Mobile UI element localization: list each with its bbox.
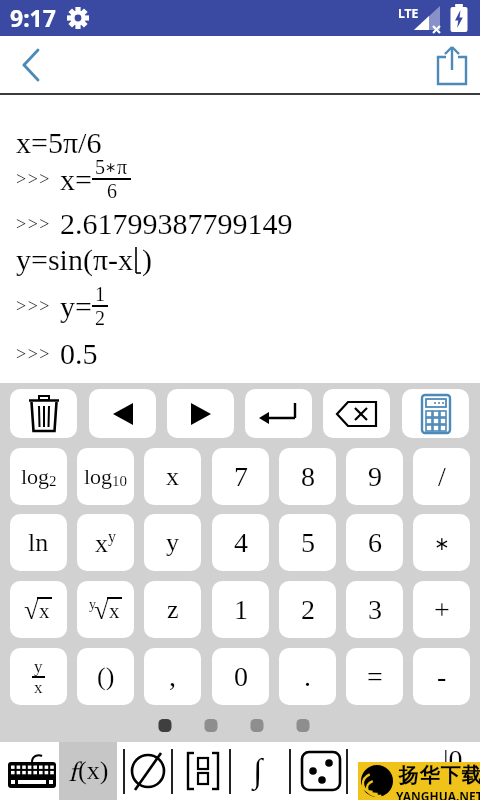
staticText: √: [94, 595, 109, 625]
button[interactable]: [323, 389, 390, 438]
staticText: 0: [234, 661, 248, 692]
staticText: YANGHUA.NET: [396, 788, 480, 800]
staticText: |0: [443, 744, 463, 775]
staticText: y: [166, 528, 179, 557]
button[interactable]: x: [144, 448, 201, 505]
staticText: (): [97, 662, 115, 691]
staticText: 1: [95, 283, 105, 305]
staticText: y: [89, 597, 96, 613]
staticText: =: [367, 661, 383, 692]
button[interactable]: 3: [346, 581, 403, 638]
staticText: +: [434, 594, 450, 625]
staticText: 5: [301, 527, 315, 558]
button[interactable]: 0: [212, 648, 269, 705]
staticText: 扬华下载: [398, 763, 480, 788]
staticText: 9: [368, 461, 382, 492]
staticText: ∗: [434, 532, 450, 554]
button[interactable]: 2: [279, 581, 336, 638]
button[interactable]: [430, 42, 474, 90]
button[interactable]: [182, 742, 224, 800]
button[interactable]: ,: [144, 648, 201, 705]
button[interactable]: -: [413, 648, 470, 705]
staticText: >>>: [16, 169, 51, 189]
button[interactable]: log10: [77, 448, 134, 505]
button[interactable]: [6, 40, 54, 88]
button[interactable]: [10, 389, 77, 438]
staticText: π: [117, 156, 128, 178]
button[interactable]: xy: [77, 514, 134, 571]
button[interactable]: √: [10, 581, 67, 638]
staticText: 4: [234, 527, 248, 558]
button[interactable]: y: [144, 514, 201, 571]
staticText: -: [437, 661, 447, 692]
staticText: f: [68, 756, 78, 787]
button[interactable]: 9: [346, 448, 403, 505]
staticText: x: [109, 599, 120, 622]
staticText: ∫: [253, 752, 263, 790]
staticText: log10: [84, 464, 128, 489]
button[interactable]: 1: [212, 581, 269, 638]
staticText: 8: [301, 461, 315, 492]
staticText: >>>: [16, 296, 51, 316]
staticText: ,: [169, 661, 176, 692]
staticText: x=: [60, 163, 92, 196]
staticText: >>>: [16, 344, 51, 364]
staticText: 7: [234, 461, 248, 492]
button[interactable]: .: [279, 648, 336, 705]
staticText: z: [167, 595, 179, 624]
staticText: y: [34, 657, 43, 676]
button[interactable]: f: [59, 742, 117, 800]
staticText: 5: [95, 156, 105, 178]
staticText: .: [304, 661, 311, 692]
staticText: x: [34, 678, 43, 697]
button[interactable]: [128, 742, 168, 800]
button[interactable]: /: [413, 448, 470, 505]
staticText: log2: [21, 464, 57, 489]
staticText: LTE: [398, 5, 419, 21]
button[interactable]: y: [77, 581, 134, 638]
button[interactable]: (): [77, 648, 134, 705]
staticText: y=sin(π-x: [16, 243, 134, 276]
staticText: xy: [95, 528, 116, 557]
button[interactable]: [402, 389, 469, 438]
staticText: 9:17: [10, 2, 56, 33]
button[interactable]: 6: [346, 514, 403, 571]
button[interactable]: [167, 389, 234, 438]
button[interactable]: 7: [212, 448, 269, 505]
staticText: /: [438, 461, 446, 492]
staticText: 1: [234, 594, 248, 625]
staticText: ∗: [105, 159, 117, 175]
staticText: x=5π/6: [16, 126, 102, 159]
staticText: x: [166, 462, 179, 491]
staticText: (x): [78, 756, 109, 785]
button[interactable]: [89, 389, 156, 438]
staticText: 6: [107, 180, 117, 202]
button[interactable]: 8: [279, 448, 336, 505]
staticText: ): [142, 243, 152, 276]
button[interactable]: log2: [10, 448, 67, 505]
staticText: 6: [368, 527, 382, 558]
staticText: 2: [301, 594, 315, 625]
staticText: y=: [60, 290, 92, 323]
button[interactable]: ∗: [413, 514, 470, 571]
staticText: √: [24, 595, 39, 625]
staticText: 2.61799387799149: [60, 207, 293, 240]
button[interactable]: 4: [212, 514, 269, 571]
staticText: 0.5: [60, 337, 98, 370]
button[interactable]: ln: [10, 514, 67, 571]
button[interactable]: 5: [279, 514, 336, 571]
button[interactable]: y: [10, 648, 67, 705]
button[interactable]: z: [144, 581, 201, 638]
staticText: >>>: [16, 214, 51, 234]
button[interactable]: [298, 742, 344, 800]
button[interactable]: +: [413, 581, 470, 638]
button[interactable]: ∫: [240, 742, 276, 800]
button[interactable]: [4, 742, 60, 800]
staticText: 2: [95, 307, 105, 329]
staticText: x: [39, 599, 50, 622]
staticText: ln: [28, 528, 49, 557]
button[interactable]: =: [346, 648, 403, 705]
button[interactable]: [245, 389, 312, 438]
staticText: 3: [368, 594, 382, 625]
